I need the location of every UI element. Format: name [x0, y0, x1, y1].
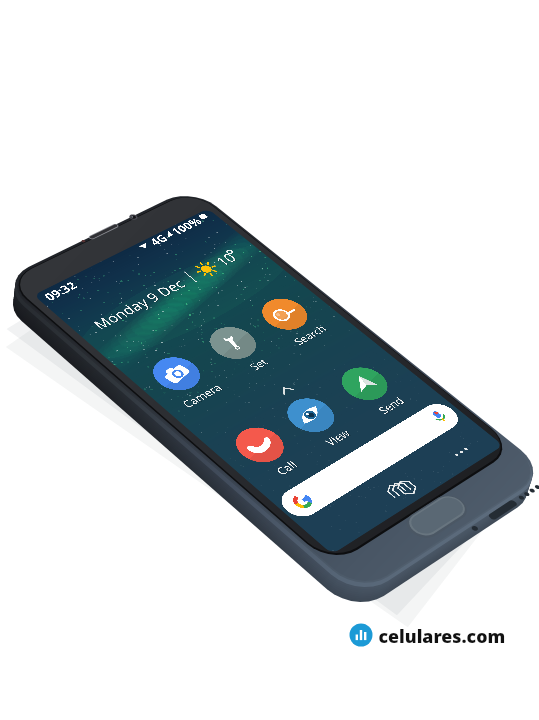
button[interactable]: Doro phone product photo	[0, 0, 539, 720]
